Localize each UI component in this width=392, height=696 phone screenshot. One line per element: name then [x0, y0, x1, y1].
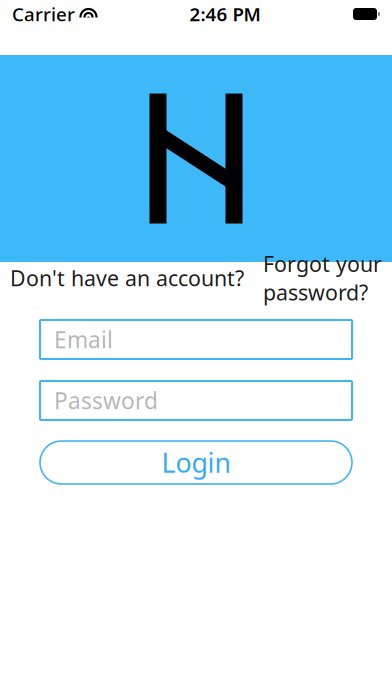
staticText: Password: [54, 385, 158, 415]
staticText: Forgot your password?: [263, 250, 382, 306]
button[interactable]: Don't have an account?: [10, 264, 244, 292]
button[interactable]: Forgot your password?: [263, 250, 382, 306]
staticText: Email: [54, 324, 113, 354]
staticText: Carrier: [12, 2, 75, 26]
staticText: 2:46 PM: [189, 2, 260, 26]
button[interactable]: Email: [40, 320, 352, 359]
staticText: Don't have an account?: [10, 264, 244, 292]
button[interactable]: Password: [40, 381, 352, 420]
staticText: Login: [161, 445, 230, 480]
button[interactable]: Login: [40, 441, 352, 484]
